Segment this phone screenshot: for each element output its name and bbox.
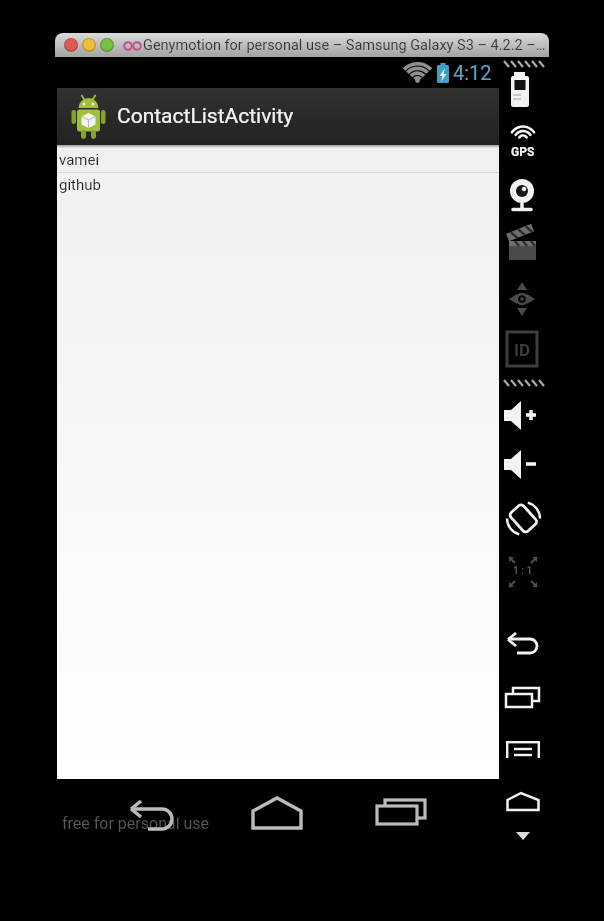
button[interactable] bbox=[505, 631, 541, 657]
button[interactable] bbox=[376, 796, 434, 836]
button[interactable] bbox=[506, 791, 540, 813]
button[interactable] bbox=[504, 400, 540, 431]
button[interactable] bbox=[507, 280, 537, 318]
staticText: Genymotion for personal use – Samsung Ga… bbox=[143, 37, 546, 54]
button[interactable] bbox=[508, 72, 536, 109]
button[interactable] bbox=[506, 741, 540, 761]
button[interactable] bbox=[507, 178, 537, 214]
button[interactable] bbox=[504, 449, 540, 480]
button[interactable] bbox=[507, 228, 537, 264]
staticText: 4:12 bbox=[453, 61, 492, 84]
button[interactable]: github bbox=[57, 173, 499, 197]
staticText: free for personal use bbox=[62, 814, 210, 833]
button[interactable]: 1 : 1 bbox=[505, 551, 541, 591]
staticText: GPS bbox=[511, 145, 535, 159]
button[interactable] bbox=[505, 687, 541, 711]
button[interactable]: GPS bbox=[503, 123, 543, 159]
staticText: vamei bbox=[59, 151, 100, 169]
button[interactable] bbox=[250, 794, 308, 834]
staticText: ID bbox=[514, 340, 531, 360]
staticText: github bbox=[59, 176, 101, 194]
staticText: ContactListActivity bbox=[117, 104, 294, 129]
staticText: 1 : 1 bbox=[513, 565, 533, 577]
button[interactable] bbox=[126, 796, 184, 836]
button[interactable] bbox=[506, 500, 540, 538]
button[interactable]: vamei bbox=[57, 148, 499, 172]
button[interactable]: ID bbox=[505, 330, 539, 370]
